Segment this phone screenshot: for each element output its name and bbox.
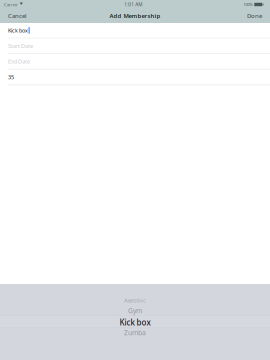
button[interactable]: End Date <box>0 54 270 70</box>
staticText: Add Membership <box>109 12 160 20</box>
button[interactable]: Done <box>241 10 270 22</box>
staticText: Start Date <box>8 42 33 50</box>
staticText: 100% <box>243 2 252 7</box>
staticText: End Date <box>8 58 30 65</box>
button[interactable]: Kick box <box>0 316 270 329</box>
staticText: Cancel <box>8 12 27 20</box>
button[interactable]: Cancel <box>0 10 33 22</box>
button[interactable]: 35 <box>0 70 270 85</box>
button[interactable]: Gym <box>0 306 270 315</box>
staticText: 1:01 AM <box>124 1 142 8</box>
staticText: Done <box>247 12 262 20</box>
staticText: Zumba <box>124 328 146 337</box>
staticText: Aerobic <box>124 296 146 304</box>
button[interactable]: Kick box <box>0 23 270 39</box>
staticText: Kick box <box>119 317 150 328</box>
staticText: 35 <box>8 73 14 81</box>
staticText: Kick box <box>8 27 28 34</box>
button[interactable]: Zumba <box>0 328 270 337</box>
button[interactable]: Aerobic <box>0 296 270 305</box>
staticText: Gym <box>128 306 142 315</box>
button[interactable]: Start Date <box>0 39 270 54</box>
staticText: Carrier <box>4 2 18 7</box>
